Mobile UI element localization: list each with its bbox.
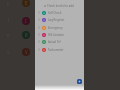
button[interactable]: Self Check — [35, 9, 84, 16]
staticText: I — [8, 18, 10, 22]
button[interactable]: Actual Tel — [35, 38, 84, 45]
button[interactable]: Log Register — [35, 16, 84, 23]
button[interactable]: E — [22, 0, 30, 7]
staticText: I — [25, 18, 27, 24]
staticText: E — [25, 0, 28, 6]
staticText: Hill Litration — [48, 33, 64, 37]
staticText: V — [7, 50, 10, 54]
staticText: Log Register — [48, 18, 65, 22]
button[interactable]: I — [22, 17, 30, 25]
button[interactable]: Hill Litration — [35, 31, 84, 38]
button[interactable]: Tachometer — [35, 46, 84, 53]
button[interactable]: Add item — [77, 79, 82, 84]
staticText: Check item(s) to add — [47, 4, 74, 8]
staticText: E — [7, 1, 10, 5]
staticText: Emergency — [48, 26, 63, 30]
staticText: Tachometer — [48, 48, 64, 52]
staticText: Actual Tel — [48, 40, 61, 44]
staticText: R — [7, 33, 10, 37]
button[interactable]: V — [22, 48, 30, 56]
button[interactable]: Emergency — [35, 24, 84, 31]
staticText: Self Check — [48, 11, 62, 15]
button[interactable]: R — [22, 31, 30, 39]
staticText: R — [25, 32, 28, 38]
staticText: V — [25, 49, 28, 55]
